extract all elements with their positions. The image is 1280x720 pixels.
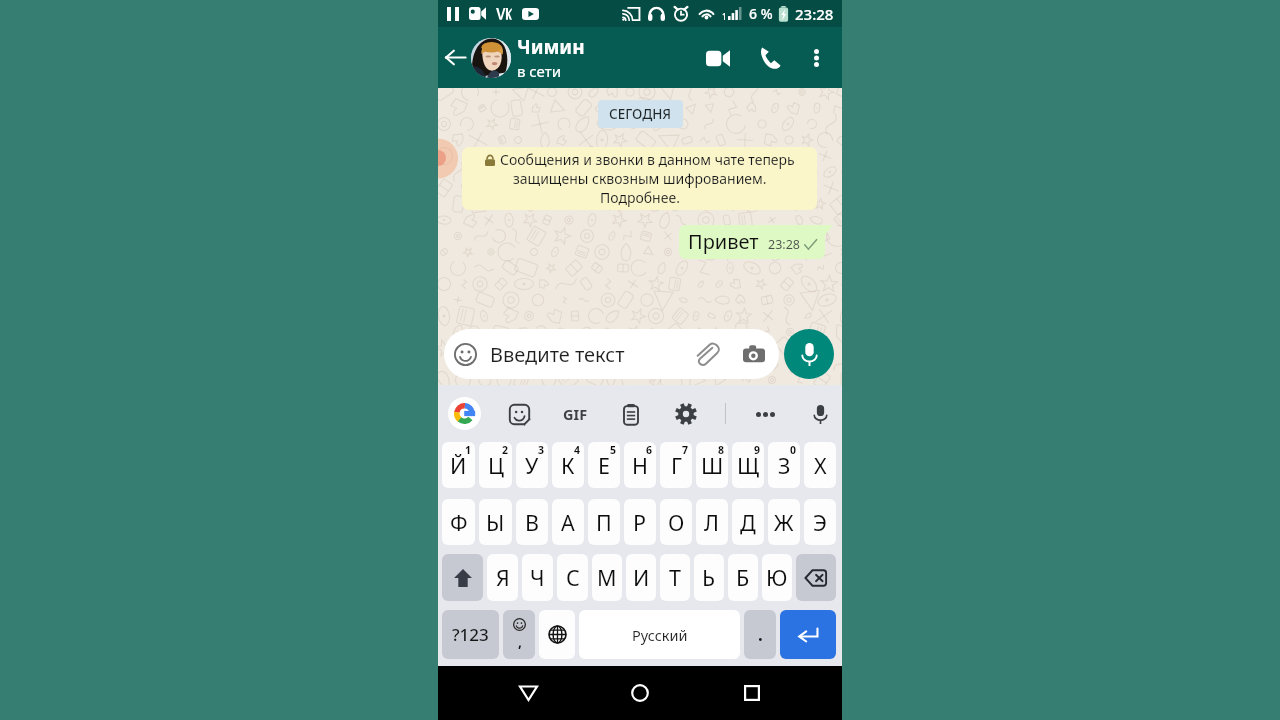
button[interactable]: Введите текст <box>444 329 779 379</box>
button[interactable]: Е <box>588 442 620 488</box>
button[interactable]: Ш <box>696 442 728 488</box>
button[interactable]: Voice input <box>804 398 836 430</box>
button[interactable]: Х <box>804 442 836 488</box>
staticText: 6 % <box>749 4 773 23</box>
button[interactable]: О <box>660 499 692 545</box>
staticText: 6 <box>646 443 653 457</box>
button[interactable]: Сообщения и звонки в данном чате теперь <box>462 147 817 210</box>
button[interactable]: И <box>626 554 656 601</box>
button[interactable]: Русский <box>579 610 740 659</box>
staticText: П <box>596 508 612 537</box>
staticText: С <box>566 563 580 592</box>
button[interactable]: Ю <box>762 554 792 601</box>
button[interactable]: Й <box>442 442 475 488</box>
staticText: А <box>561 508 575 537</box>
staticText: СЕГОДНЯ <box>609 105 672 123</box>
button[interactable]: А <box>552 499 584 545</box>
button[interactable]: К <box>552 442 584 488</box>
staticText: 0 <box>790 443 797 457</box>
button[interactable]: Home <box>618 671 662 715</box>
staticText: 1 <box>722 11 727 22</box>
staticText: Э <box>813 508 827 537</box>
button[interactable]: Video call <box>700 40 736 76</box>
button[interactable]: Ь <box>694 554 724 601</box>
staticText: 23:28 <box>768 236 800 253</box>
button[interactable]: Contact profile photo <box>471 38 511 78</box>
button[interactable]: Emoji and comma <box>503 610 535 659</box>
button[interactable]: Г <box>660 442 692 488</box>
button[interactable]: Ч <box>522 554 553 601</box>
staticText: Ь <box>702 563 716 592</box>
staticText: 7 <box>682 443 689 457</box>
button[interactable]: More options <box>749 398 781 430</box>
button[interactable]: Ж <box>768 499 800 545</box>
button[interactable]: Stickers <box>503 398 535 430</box>
button[interactable]: З <box>768 442 800 488</box>
staticText: Подробнее. <box>600 188 680 207</box>
button[interactable]: М <box>592 554 622 601</box>
button[interactable]: Щ <box>732 442 764 488</box>
button[interactable]: Record voice message <box>784 329 834 379</box>
button[interactable]: Back <box>506 671 550 715</box>
button[interactable]: Т <box>660 554 690 601</box>
staticText: Ш <box>701 451 724 480</box>
button[interactable]: Ы <box>479 499 512 545</box>
staticText: Ж <box>774 508 794 537</box>
button[interactable]: С <box>557 554 588 601</box>
button[interactable]: ?123 <box>442 610 499 659</box>
button[interactable]: Н <box>624 442 656 488</box>
button[interactable]: More options <box>802 44 830 72</box>
staticText: 5 <box>610 443 617 457</box>
button[interactable]: Ц <box>479 442 512 488</box>
staticText: 2 <box>502 443 509 457</box>
staticText: 1 <box>465 443 472 457</box>
staticText: Русский <box>632 625 688 645</box>
staticText: Х <box>814 451 827 480</box>
staticText: Ф <box>450 508 468 537</box>
button[interactable]: Recent apps <box>730 671 774 715</box>
button[interactable]: Change keyboard language <box>539 610 575 659</box>
staticText: 4 <box>574 443 581 457</box>
button[interactable]: Back <box>441 43 470 72</box>
button[interactable]: Привет <box>679 225 825 259</box>
button[interactable]: СЕГОДНЯ <box>598 100 683 128</box>
button[interactable]: Backspace <box>796 554 836 601</box>
button[interactable]: Google search <box>448 397 481 430</box>
staticText: В <box>525 508 539 537</box>
staticText: Сообщения и звонки в данном чате теперь <box>500 150 795 169</box>
button[interactable]: Shift <box>442 554 483 601</box>
button[interactable]: . <box>744 610 776 659</box>
button[interactable]: П <box>588 499 620 545</box>
button[interactable]: Ф <box>442 499 475 545</box>
staticText: Л <box>704 508 720 537</box>
staticText: защищены сквозным шифрованием. <box>513 169 767 188</box>
button[interactable]: Б <box>728 554 758 601</box>
button[interactable]: Keyboard settings <box>670 398 702 430</box>
button[interactable]: Р <box>624 499 656 545</box>
staticText: У <box>525 451 539 480</box>
button[interactable]: Э <box>804 499 836 545</box>
staticText: Чимин <box>517 34 585 60</box>
staticText: М <box>597 563 617 592</box>
button[interactable]: Л <box>696 499 728 545</box>
staticText: Я <box>496 563 510 592</box>
button[interactable]: Я <box>487 554 518 601</box>
button[interactable]: GIF <box>557 399 593 429</box>
button[interactable]: В <box>516 499 548 545</box>
staticText: , <box>518 632 522 651</box>
staticText: Ы <box>486 508 505 537</box>
staticText: Б <box>736 563 750 592</box>
button[interactable]: У <box>516 442 548 488</box>
button[interactable]: Call <box>752 40 788 76</box>
staticText: К <box>561 451 575 480</box>
staticText: Ч <box>530 563 545 592</box>
button[interactable]: Clipboard <box>615 398 647 430</box>
staticText: Введите текст <box>490 341 625 368</box>
staticText: 23:28 <box>795 4 834 24</box>
button[interactable]: Enter <box>780 610 836 659</box>
staticText: О <box>668 508 685 537</box>
button[interactable]: Д <box>732 499 764 545</box>
staticText: Д <box>740 508 756 537</box>
staticText: Привет <box>688 228 759 255</box>
staticText: GIF <box>563 404 588 424</box>
